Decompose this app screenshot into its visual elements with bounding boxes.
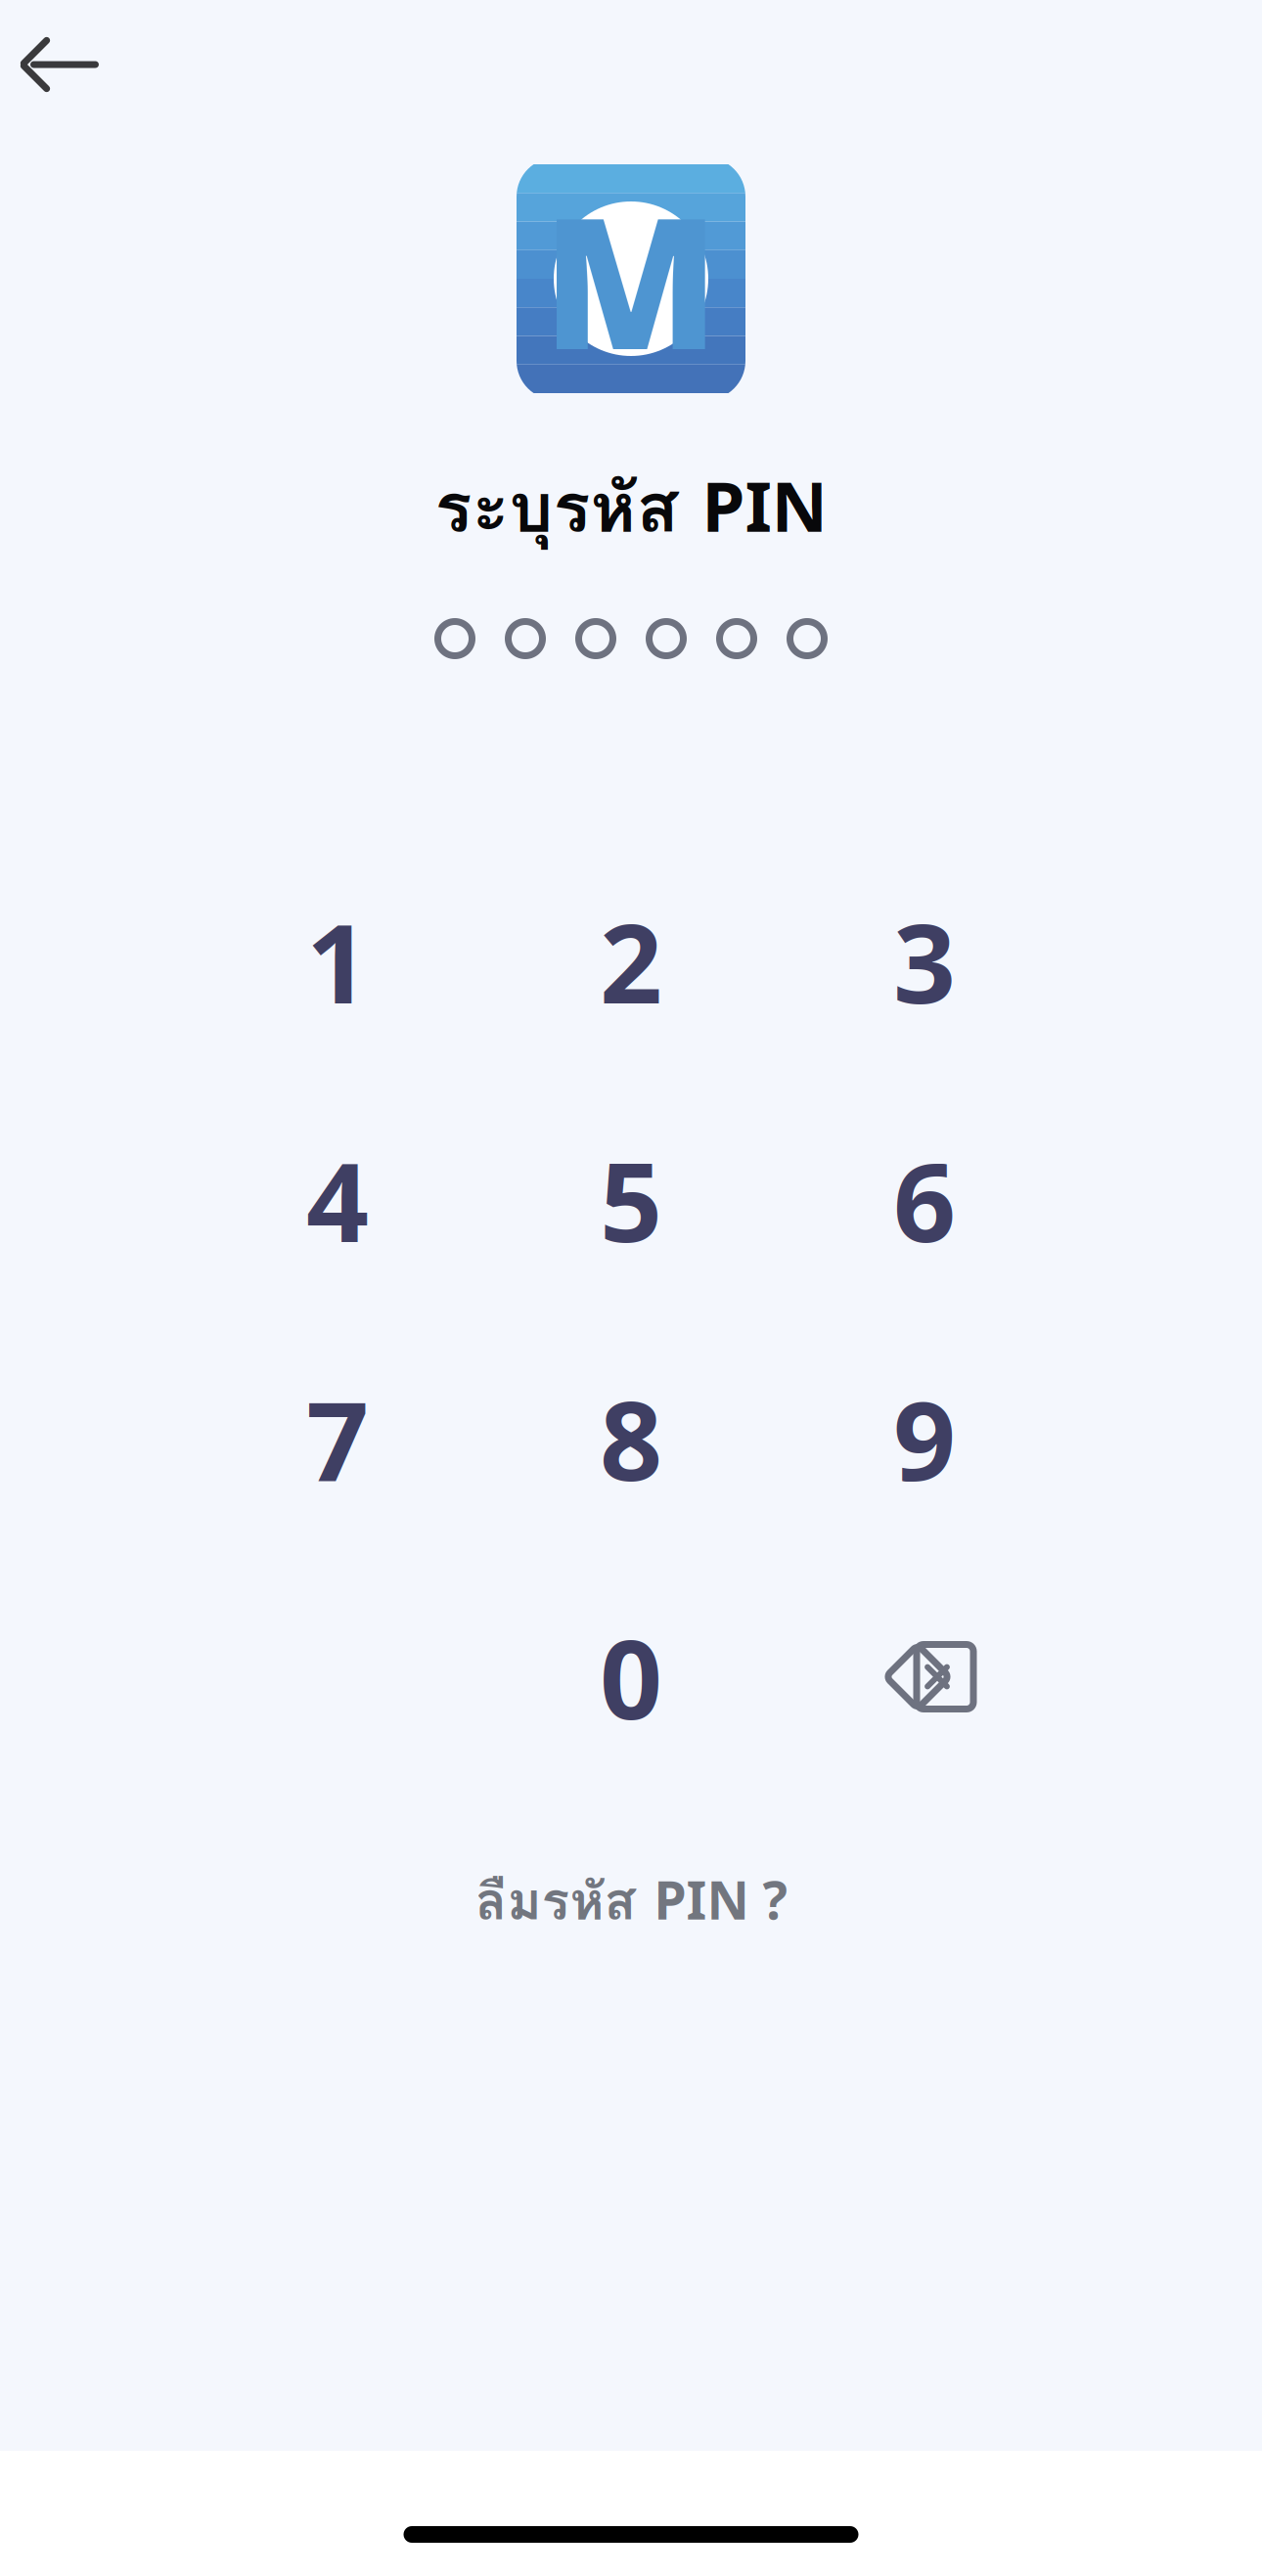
staticText: 0 [600, 1604, 662, 1749]
staticText: 7 [306, 1365, 369, 1511]
staticText: M [542, 158, 720, 400]
button[interactable]: 9 [778, 1319, 1071, 1557]
button[interactable]: 8 [484, 1319, 778, 1557]
staticText: 9 [893, 1365, 956, 1511]
button[interactable]: Delete [778, 1557, 1071, 1796]
staticText: ระบุรหัส PIN [435, 454, 827, 561]
staticText: 4 [306, 1127, 369, 1272]
button[interactable]: 0 [484, 1557, 778, 1796]
staticText: ลืมรหัส PIN ? [475, 1861, 787, 1941]
staticText: 8 [600, 1365, 662, 1511]
button[interactable]: ลืมรหัส PIN ? [436, 1843, 826, 1959]
staticText: 6 [893, 1127, 956, 1272]
staticText: 5 [600, 1127, 662, 1272]
button[interactable]: 7 [191, 1319, 484, 1557]
staticText: 1 [306, 888, 369, 1034]
button[interactable]: 4 [191, 1080, 484, 1319]
button[interactable]: 6 [778, 1080, 1071, 1319]
button[interactable]: 2 [484, 842, 778, 1080]
staticText: 3 [893, 888, 956, 1034]
button[interactable]: 3 [778, 842, 1071, 1080]
button[interactable]: 1 [191, 842, 484, 1080]
staticText: 2 [600, 888, 662, 1034]
button[interactable]: Back [14, 18, 108, 111]
button[interactable]: 5 [484, 1080, 778, 1319]
